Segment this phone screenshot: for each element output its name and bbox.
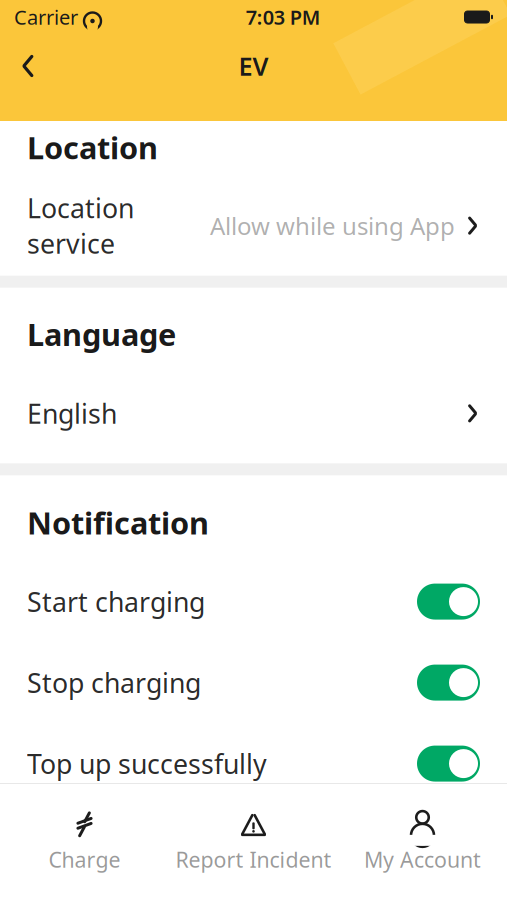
staticText: Allow while using App — [210, 210, 455, 242]
staticText: Language — [27, 314, 176, 354]
staticText: Report Incident — [175, 845, 331, 874]
button[interactable]: My Account — [338, 797, 507, 887]
staticText: Notification — [27, 502, 209, 543]
staticText: Location — [27, 127, 158, 168]
button[interactable]: Report Incident — [169, 797, 338, 887]
button[interactable]: Charge — [0, 797, 169, 887]
staticText: Start charging — [27, 584, 205, 619]
staticText: EV — [238, 49, 268, 83]
staticText: English — [27, 396, 117, 431]
staticText: Carrier — [14, 4, 78, 30]
button[interactable]: Back — [0, 40, 56, 92]
staticText: My Account — [364, 845, 481, 874]
button[interactable]: Stop charging — [417, 665, 480, 701]
staticText: 7:03 PM — [246, 4, 321, 30]
button[interactable]: Top up successfully — [417, 746, 480, 782]
staticText: Charge — [48, 845, 120, 874]
staticText: Top up successfully — [27, 746, 267, 781]
staticText: Location service — [27, 190, 134, 261]
button[interactable]: English — [0, 382, 507, 444]
staticText: Stop charging — [27, 665, 201, 700]
button[interactable]: Start charging — [417, 584, 480, 620]
button[interactable]: Location service — [0, 195, 507, 257]
